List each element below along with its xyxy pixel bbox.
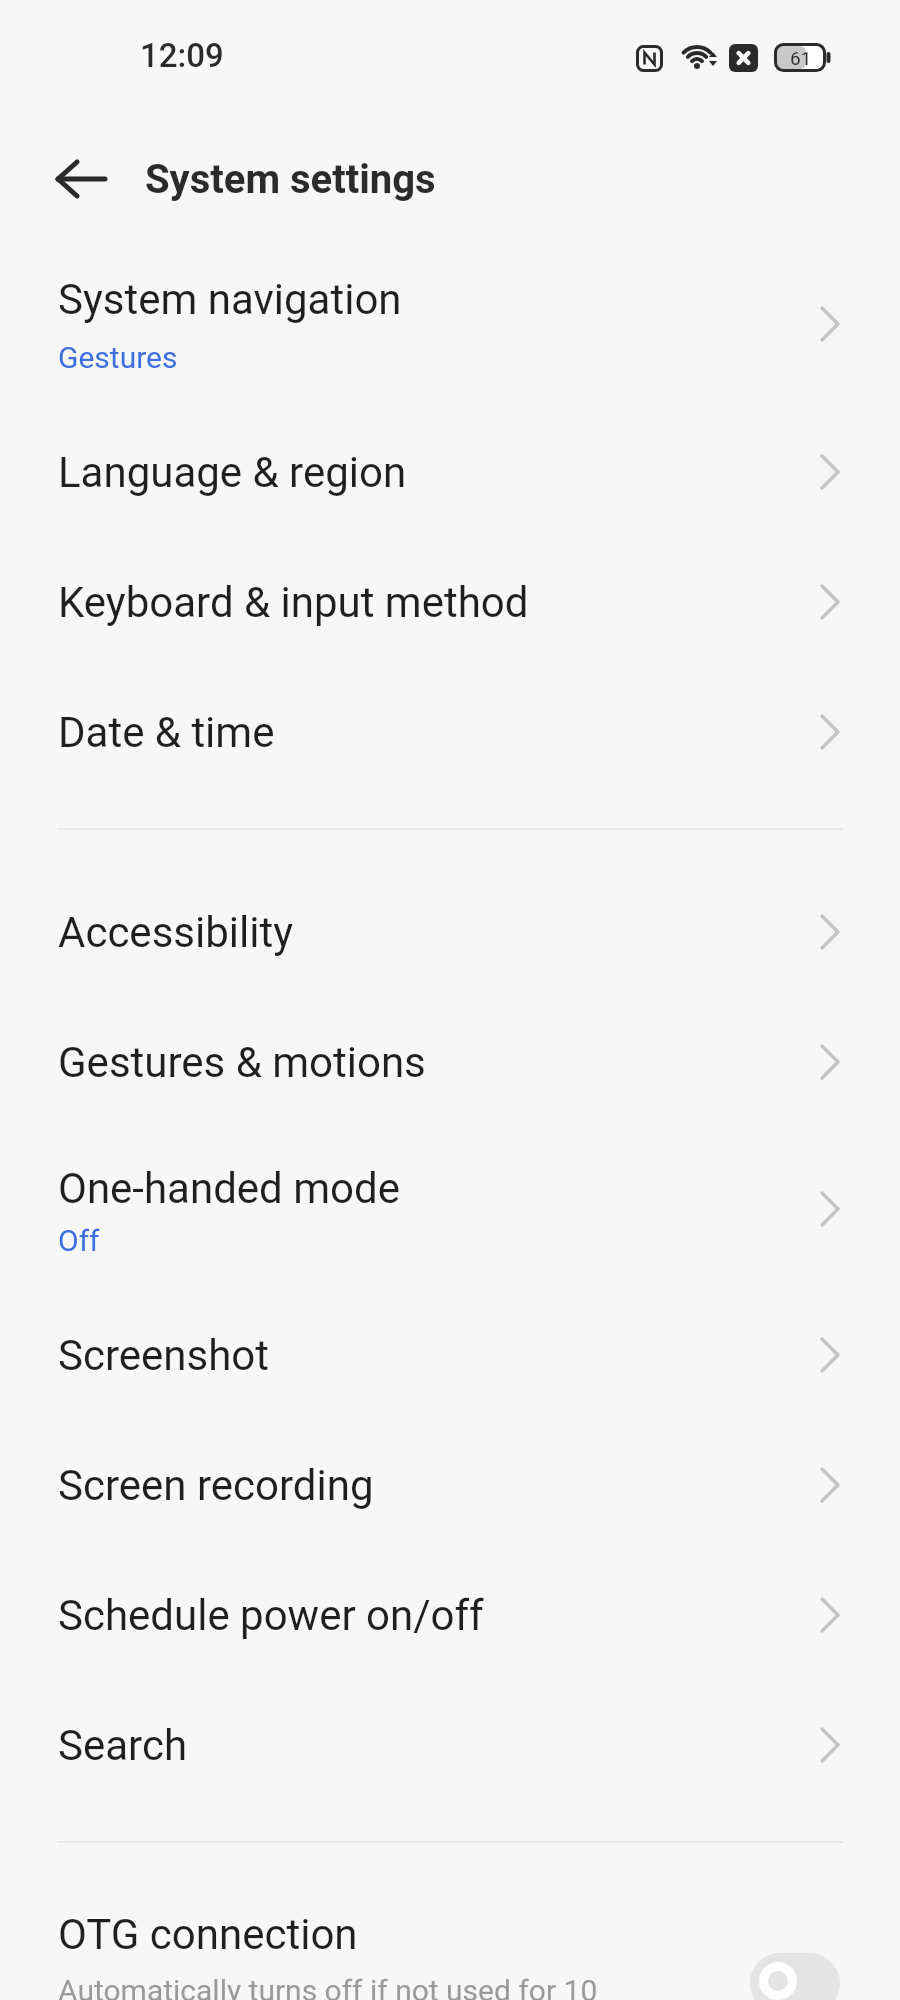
button[interactable]: Keyboard & input method bbox=[0, 537, 900, 667]
button[interactable]: Accessibility bbox=[0, 867, 900, 997]
button[interactable]: Search bbox=[0, 1680, 900, 1810]
button[interactable]: Screenshot bbox=[0, 1290, 900, 1420]
button[interactable]: System navigation bbox=[0, 240, 900, 407]
button[interactable]: Screen recording bbox=[0, 1420, 900, 1550]
staticText: Schedule power on/off bbox=[58, 1591, 484, 1640]
staticText: Off bbox=[58, 1223, 100, 1258]
button[interactable]: OTG connection bbox=[0, 1843, 900, 2000]
button[interactable]: Schedule power on/off bbox=[0, 1550, 900, 1680]
staticText: Screenshot bbox=[58, 1331, 270, 1380]
staticText: One-handed mode bbox=[58, 1164, 400, 1213]
button[interactable]: Date & time bbox=[0, 667, 900, 797]
staticText: 61 bbox=[790, 47, 812, 69]
staticText: 12:09 bbox=[140, 36, 224, 75]
staticText: Automatically turns off if not used for … bbox=[58, 1973, 598, 2000]
staticText: Language & region bbox=[58, 448, 407, 497]
staticText: Gestures & motions bbox=[58, 1038, 426, 1087]
staticText: Accessibility bbox=[58, 908, 294, 957]
staticText: Search bbox=[58, 1721, 188, 1770]
button[interactable] bbox=[54, 159, 110, 199]
staticText: OTG connection bbox=[58, 1910, 358, 1959]
staticText: Date & time bbox=[58, 708, 275, 757]
button[interactable]: One-handed mode bbox=[0, 1127, 900, 1290]
button[interactable]: Language & region bbox=[0, 407, 900, 537]
staticText: System navigation bbox=[58, 275, 402, 324]
staticText: Screen recording bbox=[58, 1461, 374, 1510]
staticText: System settings bbox=[145, 156, 436, 203]
staticText: Gestures bbox=[58, 340, 178, 375]
staticText: Keyboard & input method bbox=[58, 578, 529, 627]
button[interactable]: Gestures & motions bbox=[0, 997, 900, 1127]
